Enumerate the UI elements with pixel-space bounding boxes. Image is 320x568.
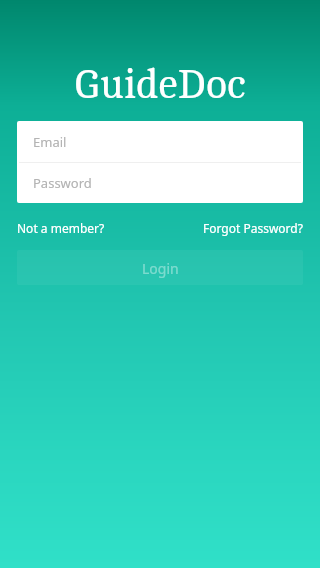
staticText: Password — [33, 174, 92, 192]
button[interactable]: Not a member? — [17, 220, 105, 236]
button[interactable]: Password — [17, 163, 303, 203]
button[interactable]: Login — [17, 250, 303, 285]
staticText: Email — [33, 133, 67, 151]
button[interactable]: Email — [17, 121, 303, 162]
staticText: GuideDoc — [0, 63, 320, 108]
button[interactable]: Forgot Password? — [203, 220, 303, 236]
staticText: Login — [142, 259, 179, 278]
